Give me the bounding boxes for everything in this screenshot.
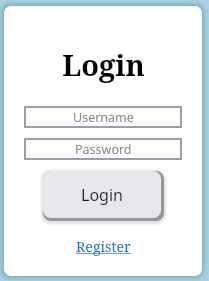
staticText: Login <box>62 45 145 84</box>
staticText: Register <box>76 237 131 256</box>
button[interactable]: Password <box>24 138 182 160</box>
button[interactable]: Login <box>43 171 161 218</box>
staticText: Password <box>75 141 132 158</box>
button[interactable]: Username <box>24 106 182 128</box>
staticText: Login <box>81 184 123 206</box>
staticText: Username <box>73 109 134 126</box>
button[interactable]: Register <box>74 237 133 256</box>
